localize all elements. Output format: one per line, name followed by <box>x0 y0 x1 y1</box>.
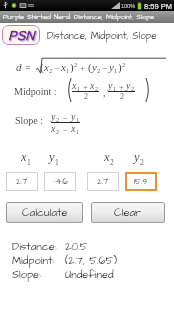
staticText: 2.7 <box>97 176 109 188</box>
staticText: − <box>54 63 60 73</box>
staticText: Midpoint: <box>12 253 55 268</box>
staticText: Distance: <box>12 239 57 254</box>
staticText: = <box>25 62 31 73</box>
button[interactable]: Calculate <box>6 202 83 223</box>
staticText: y <box>49 150 55 164</box>
staticText: y <box>109 61 114 73</box>
staticText: 2 <box>122 61 126 68</box>
staticText: − <box>102 63 108 73</box>
staticText: 1 <box>66 67 70 74</box>
staticText: y <box>51 111 56 122</box>
staticText: − <box>63 113 68 122</box>
staticText: x <box>61 61 66 73</box>
staticText: ( <box>40 61 44 73</box>
staticText: 1 <box>113 85 117 92</box>
staticText: (2.7, 5.65) <box>65 253 118 268</box>
staticText: Slope : <box>15 115 44 126</box>
button[interactable]: -4.6 <box>44 172 76 191</box>
staticText: 2 <box>97 67 101 74</box>
staticText: 1 <box>76 128 80 135</box>
staticText: 2 <box>56 116 60 123</box>
staticText: , <box>103 87 106 98</box>
staticText: 2 <box>56 128 60 135</box>
staticText: x <box>21 150 27 164</box>
staticText: 100% <box>121 3 136 9</box>
staticText: Midpoint : <box>14 86 57 97</box>
staticText: Purple Shirted Nerd: Distance, Midpoint,… <box>3 12 155 22</box>
staticText: d <box>16 61 22 73</box>
staticText: 2 <box>131 85 135 92</box>
staticText: 2 <box>84 92 88 101</box>
staticText: y <box>126 80 131 91</box>
staticText: 1 <box>114 67 118 74</box>
staticText: Calculate <box>22 205 68 220</box>
staticText: 2 <box>120 92 124 101</box>
staticText: Slope: <box>12 267 41 282</box>
staticText: x <box>71 123 76 134</box>
staticText: − <box>63 125 68 134</box>
staticText: PSN <box>8 28 35 43</box>
staticText: x <box>90 80 95 91</box>
staticText: y <box>71 111 76 122</box>
staticText: 2 <box>110 158 114 166</box>
staticText: Undefined <box>65 267 114 282</box>
staticText: 1 <box>55 158 59 166</box>
staticText: y <box>108 80 113 91</box>
staticText: 1 <box>77 85 81 92</box>
staticText: 8:59 PM <box>144 2 172 10</box>
staticText: 2.7 <box>16 176 28 188</box>
staticText: y <box>134 150 140 164</box>
staticText: 2 <box>95 85 99 92</box>
staticText: y <box>92 61 97 73</box>
button[interactable]: Purple Shirted Nerd logo <box>2 25 40 45</box>
staticText: x <box>104 150 110 164</box>
staticText: Distance, Midpoint, Slope <box>47 29 157 43</box>
staticText: PSN <box>9 29 36 44</box>
staticText: + <box>119 82 124 91</box>
staticText: x <box>72 80 77 91</box>
staticText: 2 <box>49 67 53 74</box>
staticText: 2 <box>140 158 144 166</box>
staticText: ( <box>88 61 92 73</box>
staticText: 1 <box>76 116 80 123</box>
staticText: Clear <box>114 205 142 220</box>
staticText: 1 <box>27 158 31 166</box>
button[interactable]: 15.9 <box>125 172 157 191</box>
staticText: -4.6 <box>53 176 68 188</box>
staticText: ) <box>118 61 122 73</box>
staticText: + <box>83 82 88 91</box>
staticText: x <box>51 123 56 134</box>
staticText: 15.9 <box>134 176 148 188</box>
staticText: x <box>44 61 49 73</box>
button[interactable]: 2.7 <box>6 172 38 191</box>
staticText: + <box>80 63 86 73</box>
button[interactable]: Clear <box>91 202 165 223</box>
staticText: ) <box>70 61 74 73</box>
staticText: 2 <box>74 61 78 68</box>
button[interactable]: 2.7 <box>87 172 119 191</box>
staticText: 20.5 <box>65 239 88 254</box>
